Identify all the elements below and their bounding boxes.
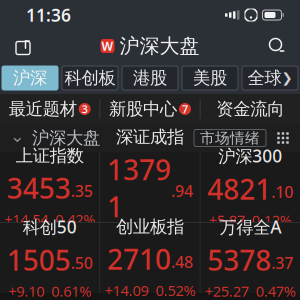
staticText: 沪深300	[218, 144, 282, 167]
staticText: 科创50	[23, 215, 77, 238]
button[interactable]: 深证成指	[100, 152, 200, 222]
staticText: +14.09	[104, 280, 148, 300]
button[interactable]: ⌄	[0, 126, 100, 150]
staticText: .37	[271, 252, 293, 273]
button[interactable]: 美股	[182, 66, 238, 90]
staticText: .94	[171, 180, 193, 201]
button[interactable]: 创业板指	[100, 223, 200, 293]
staticText: 市场情绪	[200, 129, 260, 147]
staticText: 0.12%	[252, 210, 292, 230]
button[interactable]: 新股中心	[100, 94, 200, 124]
staticText: 全球	[247, 67, 281, 89]
button[interactable]: 港股	[122, 66, 178, 90]
staticText: 沪深大盘	[119, 34, 199, 58]
staticText: 沪深大盘	[32, 127, 100, 149]
staticText: 1505	[7, 241, 71, 278]
button[interactable]: 沪深	[2, 66, 58, 90]
staticText: .48	[171, 251, 193, 272]
button[interactable]: 全球	[242, 66, 298, 90]
button[interactable]: 资金流向	[201, 94, 300, 124]
staticText: 0.47%	[256, 281, 296, 300]
button[interactable]: Grid view	[266, 124, 300, 152]
staticText: 7	[182, 102, 188, 116]
button[interactable]: 沪深300	[201, 152, 300, 222]
staticText: .10	[271, 181, 293, 202]
staticText: 创业板指	[116, 216, 184, 237]
button[interactable]: 上证指数	[0, 152, 99, 222]
staticText: 0.61%	[51, 281, 91, 300]
staticText: +5.87	[209, 210, 245, 230]
staticText: 13791	[107, 151, 171, 225]
staticText: ❯	[281, 70, 292, 85]
staticText: +9.10	[8, 281, 44, 300]
button[interactable]: 科创板	[62, 66, 118, 90]
staticText: .35	[71, 180, 93, 201]
button[interactable]: 市场情绪	[194, 129, 266, 146]
button[interactable]: 最近题材	[0, 94, 99, 124]
button[interactable]: 科创50	[0, 223, 99, 293]
staticText: +25.27	[205, 281, 249, 300]
staticText: 资金流向	[216, 98, 284, 120]
staticText: +14.54	[4, 209, 48, 229]
staticText: W	[101, 38, 113, 54]
staticText: 万得全A	[219, 215, 281, 238]
button[interactable]: 万得全A	[201, 223, 300, 293]
staticText: 深证成指	[116, 126, 184, 148]
staticText: +49.71	[104, 228, 148, 248]
staticText: 5378	[207, 241, 271, 278]
staticText: 科创板	[64, 67, 115, 89]
staticText: 最近题材	[9, 98, 77, 120]
staticText: 0.36%	[155, 228, 195, 248]
staticText: 11:36	[26, 3, 71, 26]
staticText: 0.42%	[55, 209, 95, 229]
button[interactable]: Search	[260, 31, 294, 61]
staticText: .50	[71, 252, 93, 273]
button[interactable]: Share	[6, 31, 40, 61]
staticText: 上证指数	[16, 145, 84, 166]
staticText: 3453	[7, 169, 71, 206]
staticText: 2710	[107, 240, 171, 277]
staticText: ⌄	[10, 126, 25, 146]
staticText: 0.52%	[155, 280, 195, 300]
staticText: 3	[82, 102, 88, 116]
staticText: 沪深	[13, 67, 47, 89]
staticText: 新股中心	[109, 98, 177, 120]
staticText: 4821	[207, 170, 271, 207]
staticText: 港股	[133, 67, 167, 89]
staticText: 美股	[193, 67, 227, 89]
